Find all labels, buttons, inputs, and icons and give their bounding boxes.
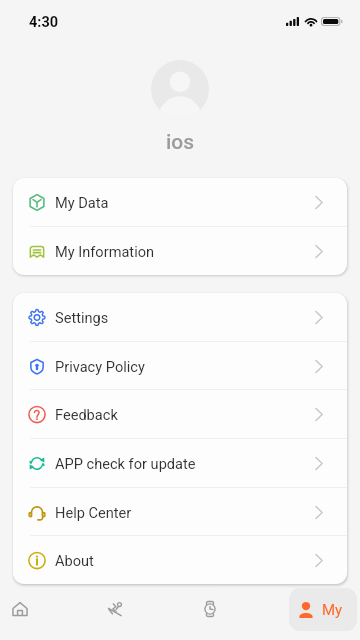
staticText: Help Center: [55, 504, 132, 521]
button[interactable]: APP check for update: [13, 439, 347, 488]
button[interactable]: My Data: [13, 178, 347, 227]
staticText: Settings: [55, 309, 109, 326]
staticText: Feedback: [55, 406, 118, 423]
staticText: 4:30: [29, 14, 59, 31]
button[interactable]: Help Center: [13, 488, 347, 536]
button[interactable]: About: [13, 536, 347, 584]
button[interactable]: Home: [0, 585, 44, 633]
button[interactable]: Settings: [13, 293, 347, 342]
staticText: My Data: [55, 194, 109, 211]
staticText: My Information: [55, 243, 155, 260]
button[interactable]: Privacy Policy: [13, 342, 347, 390]
staticText: ios: [0, 130, 360, 155]
staticText: Privacy Policy: [55, 358, 145, 375]
button[interactable]: Device: [186, 585, 234, 633]
staticText: My: [322, 601, 343, 619]
button[interactable]: Sport: [91, 585, 139, 633]
button[interactable]: My: [289, 588, 357, 631]
staticText: About: [55, 552, 94, 569]
button[interactable]: Feedback: [13, 390, 347, 439]
staticText: APP check for update: [55, 455, 196, 472]
button[interactable]: My Information: [13, 227, 347, 275]
